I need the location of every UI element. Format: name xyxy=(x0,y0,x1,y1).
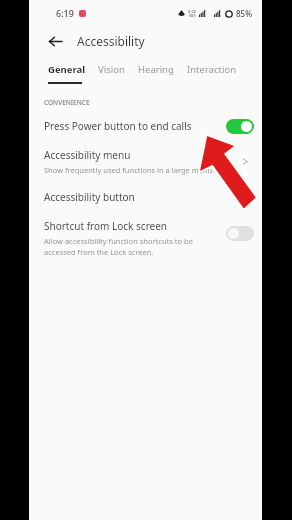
staticText: Show frequently used functions in a larg… xyxy=(44,165,215,175)
staticText: Press Power button to end calls xyxy=(44,119,226,133)
staticText: Allow accessibility function shortcuts t… xyxy=(44,236,193,257)
button[interactable]: Shortcut from Lock screen xyxy=(29,211,262,263)
staticText: Accessibility menu xyxy=(44,148,131,162)
staticText: 85% xyxy=(236,8,252,19)
button[interactable]: On xyxy=(226,119,254,134)
button[interactable]: Hearing xyxy=(133,63,179,76)
button[interactable]: Vision xyxy=(93,63,130,76)
staticText: Shortcut from Lock screen xyxy=(44,219,168,233)
staticText: 6:19 xyxy=(56,7,74,19)
staticText: Hearing xyxy=(138,63,174,76)
staticText: Accessibility button xyxy=(44,190,135,204)
staticText: General xyxy=(48,63,85,76)
button[interactable]: Off xyxy=(226,226,254,241)
button[interactable]: Accessibility menu xyxy=(29,140,262,182)
button[interactable]: Interaction xyxy=(182,63,242,76)
staticText: Interaction xyxy=(187,63,237,76)
button[interactable]: Accessibility button xyxy=(29,182,262,211)
button[interactable]: Press Power button to end calls xyxy=(29,112,262,140)
staticText: KB/S xyxy=(189,14,196,18)
staticText: CONVENIENCE xyxy=(44,98,90,107)
button[interactable]: General xyxy=(43,63,90,76)
staticText: Vision xyxy=(98,63,125,76)
staticText: Accessibility xyxy=(77,33,145,49)
button[interactable]: Back xyxy=(43,29,67,53)
staticText: 0.02 xyxy=(188,9,196,14)
